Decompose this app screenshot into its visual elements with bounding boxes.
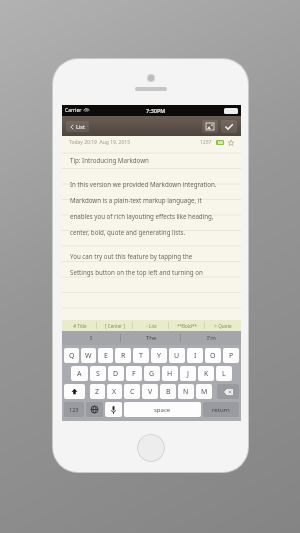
staticText: H bbox=[167, 369, 173, 379]
button[interactable]: [ Center ] bbox=[97, 320, 133, 331]
button[interactable]: Home bbox=[137, 434, 165, 462]
button[interactable]: C bbox=[124, 384, 140, 399]
button[interactable]: P bbox=[223, 348, 239, 363]
button[interactable]: **Bold** bbox=[169, 320, 205, 331]
button[interactable]: T bbox=[133, 348, 149, 363]
button[interactable]: Insert image bbox=[202, 120, 218, 133]
button[interactable]: E bbox=[98, 348, 113, 363]
button[interactable]: D bbox=[108, 366, 124, 381]
button[interactable]: - List bbox=[133, 320, 169, 331]
button[interactable]: I'm bbox=[181, 331, 241, 345]
button[interactable]: Change keyboard bbox=[86, 402, 103, 417]
button[interactable]: J bbox=[180, 366, 196, 381]
staticText: V bbox=[148, 387, 153, 397]
button[interactable]: G bbox=[144, 366, 160, 381]
staticText: E bbox=[104, 351, 108, 361]
button[interactable]: Shift bbox=[64, 384, 85, 399]
staticText: J bbox=[187, 369, 189, 379]
staticText: M bbox=[201, 387, 208, 397]
staticText: The bbox=[146, 334, 157, 342]
button[interactable]: List bbox=[66, 121, 89, 132]
staticText: A bbox=[77, 369, 82, 379]
staticText: G bbox=[149, 369, 155, 379]
staticText: I'm bbox=[207, 334, 216, 342]
staticText: 123 bbox=[69, 406, 79, 413]
button[interactable]: Star note bbox=[228, 140, 234, 146]
staticText: W bbox=[85, 351, 92, 361]
staticText: > Quote bbox=[214, 323, 232, 329]
staticText: **Bold** bbox=[177, 323, 197, 329]
button[interactable]: Dictate bbox=[105, 402, 122, 417]
staticText: P bbox=[229, 351, 234, 361]
button[interactable]: W bbox=[81, 348, 96, 363]
button[interactable]: F bbox=[126, 366, 142, 381]
button[interactable]: A bbox=[71, 366, 88, 381]
button[interactable]: S bbox=[90, 366, 106, 381]
button[interactable]: I bbox=[187, 348, 203, 363]
button[interactable]: # Title bbox=[62, 320, 97, 331]
staticText: D bbox=[113, 369, 119, 379]
staticText: Settings button on the top left and turn… bbox=[70, 268, 203, 276]
staticText: Tip: Introducing Markdown bbox=[70, 156, 149, 164]
button[interactable]: V bbox=[142, 384, 158, 399]
staticText: Q bbox=[69, 351, 75, 361]
button[interactable]: Y bbox=[151, 348, 167, 363]
staticText: S bbox=[96, 369, 100, 379]
button[interactable]: X bbox=[107, 384, 122, 399]
button[interactable]: N bbox=[178, 384, 194, 399]
staticText: L bbox=[222, 369, 226, 379]
button[interactable]: return bbox=[203, 402, 239, 417]
staticText: You can try out this feature by tapping … bbox=[70, 252, 193, 260]
staticText: I bbox=[90, 334, 93, 342]
staticText: Markdown is a plain-text markup language… bbox=[70, 196, 202, 204]
staticText: 1257 bbox=[200, 139, 212, 146]
staticText: R bbox=[121, 351, 126, 361]
button[interactable]: The bbox=[121, 331, 181, 345]
staticText: [ Center ] bbox=[105, 323, 125, 329]
button[interactable]: Z bbox=[90, 384, 105, 399]
staticText: enables you of rich layouting effects li… bbox=[70, 212, 214, 220]
staticText: Carrier bbox=[65, 107, 82, 114]
staticText: List bbox=[76, 123, 85, 130]
staticText: Y bbox=[157, 351, 161, 361]
button[interactable]: Backspace bbox=[217, 384, 239, 399]
button[interactable]: space bbox=[124, 402, 201, 417]
staticText: C bbox=[130, 387, 135, 397]
button[interactable]: 123 bbox=[64, 402, 84, 417]
staticText: X bbox=[112, 387, 117, 397]
button[interactable]: U bbox=[169, 348, 185, 363]
staticText: Today 20:19 Aug 19, 2015 bbox=[69, 139, 131, 146]
staticText: O bbox=[210, 351, 216, 361]
button[interactable]: I bbox=[62, 331, 121, 345]
staticText: center, bold, quote and generating lists… bbox=[70, 228, 186, 236]
staticText: K bbox=[204, 369, 209, 379]
button[interactable]: Done bbox=[221, 120, 237, 133]
button[interactable]: > Quote bbox=[205, 320, 241, 331]
button[interactable]: B bbox=[160, 384, 176, 399]
button[interactable]: O bbox=[205, 348, 221, 363]
button[interactable]: K bbox=[198, 366, 214, 381]
staticText: I bbox=[194, 351, 197, 361]
button[interactable]: H bbox=[162, 366, 178, 381]
button[interactable]: Q bbox=[64, 348, 79, 363]
staticText: space bbox=[154, 406, 171, 414]
staticText: N bbox=[183, 387, 189, 397]
button[interactable]: L bbox=[216, 366, 232, 381]
staticText: F bbox=[132, 369, 136, 379]
staticText: U bbox=[174, 351, 180, 361]
staticText: T bbox=[139, 351, 143, 361]
staticText: Z bbox=[95, 387, 100, 397]
button[interactable]: M bbox=[196, 384, 212, 399]
staticText: # Title bbox=[73, 323, 87, 329]
staticText: B bbox=[166, 387, 171, 397]
staticText: return bbox=[212, 406, 230, 414]
staticText: 7:30PM bbox=[146, 107, 166, 114]
staticText: - List bbox=[146, 323, 157, 329]
button[interactable]: R bbox=[115, 348, 131, 363]
staticText: MD bbox=[218, 141, 223, 145]
staticText: In this version we provided Markdown int… bbox=[70, 180, 217, 188]
